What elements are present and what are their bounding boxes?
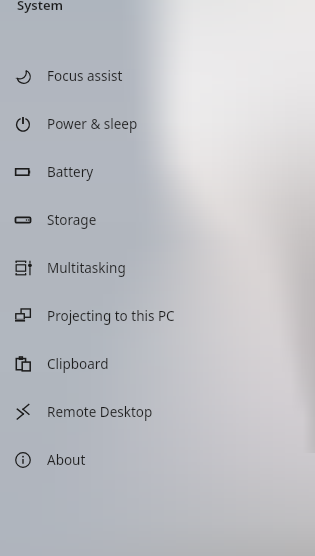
staticText: Remote Desktop [47,403,153,421]
staticText: Storage [47,211,97,229]
staticText: Focus assist [47,67,123,85]
staticText: Multitasking [47,259,126,277]
button[interactable]: Battery [0,148,315,196]
button[interactable]: Remote Desktop [0,388,315,436]
button[interactable]: Focus assist [0,52,315,100]
button[interactable]: Projecting to this PC [0,292,315,340]
button[interactable]: About [0,436,315,484]
staticText: About [47,451,86,469]
staticText: Power & sleep [47,115,138,133]
staticText: Projecting to this PC [47,307,175,325]
button[interactable]: Clipboard [0,340,315,388]
button[interactable]: Power & sleep [0,100,315,148]
staticText: System [17,0,64,14]
staticText: Clipboard [47,355,109,373]
button[interactable]: Storage [0,196,315,244]
button[interactable]: Multitasking [0,244,315,292]
staticText: Battery [47,163,94,181]
